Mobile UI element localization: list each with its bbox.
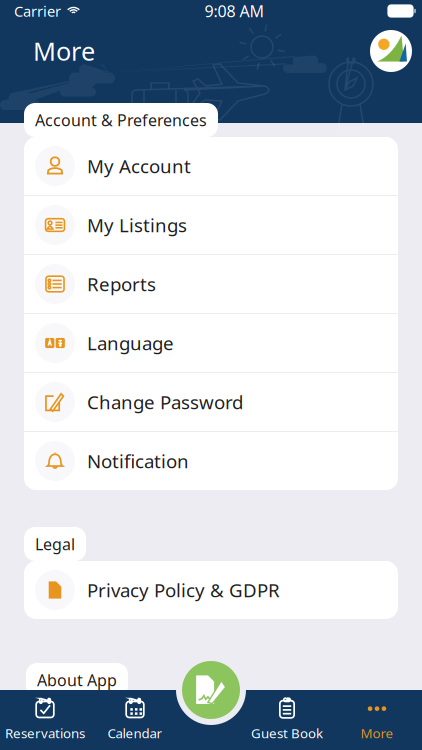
button[interactable]: Reports	[24, 255, 398, 313]
staticText: Reports	[87, 272, 156, 296]
staticText: Legal	[35, 533, 75, 555]
staticText: Account & Preferences	[35, 109, 207, 131]
button[interactable]: Legal	[24, 527, 86, 561]
staticText: About App	[37, 669, 117, 691]
staticText: 9:08 AM	[204, 0, 264, 22]
button[interactable]: Language	[24, 314, 398, 372]
button[interactable]: Reservations	[0, 690, 90, 750]
staticText: Reservations	[5, 724, 85, 742]
staticText: Language	[87, 331, 174, 355]
button[interactable]: Guest Book	[242, 690, 332, 750]
button[interactable]: Account & Preferences	[24, 103, 218, 137]
staticText: Change Password	[87, 390, 243, 414]
button[interactable]: My Account	[24, 137, 398, 195]
staticText: Privacy Policy & GDPR	[87, 578, 280, 602]
staticText: My Account	[87, 154, 191, 178]
button[interactable]: Change Password	[24, 373, 398, 431]
staticText: More	[33, 34, 95, 68]
button[interactable]: My Listings	[24, 196, 398, 254]
staticText: Carrier	[14, 1, 61, 21]
staticText: More	[360, 724, 393, 742]
staticText: My Listings	[87, 213, 187, 237]
staticText: Notification	[87, 449, 189, 473]
button[interactable]: About App	[26, 663, 128, 697]
button[interactable]: More	[332, 690, 422, 750]
staticText: Guest Book	[251, 724, 323, 742]
button[interactable]: New entry	[176, 655, 246, 725]
button[interactable]: Privacy Policy & GDPR	[24, 561, 398, 619]
button[interactable]: Calendar	[90, 690, 180, 750]
button[interactable]: Notification	[24, 432, 398, 490]
staticText: Calendar	[107, 724, 162, 742]
